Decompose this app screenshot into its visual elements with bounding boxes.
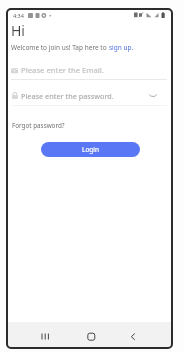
staticText: Login — [82, 145, 100, 154]
button[interactable]: Forgot password? — [12, 121, 65, 130]
button[interactable]: Please enter the password. — [11, 89, 167, 104]
staticText: Please enter the Email. — [21, 65, 104, 75]
button[interactable] — [149, 93, 157, 98]
button[interactable] — [128, 332, 139, 341]
staticText: Please enter the password. — [21, 91, 114, 101]
button[interactable] — [86, 332, 97, 341]
button[interactable] — [40, 332, 51, 341]
staticText: Hi — [11, 21, 25, 40]
button[interactable]: Please enter the Email. — [11, 63, 167, 78]
button[interactable]: sign up. — [109, 43, 134, 52]
button[interactable]: Login — [41, 142, 140, 157]
staticText: Welcome to join us! Tap here to — [11, 43, 109, 52]
staticText: 4:34 — [13, 12, 24, 19]
